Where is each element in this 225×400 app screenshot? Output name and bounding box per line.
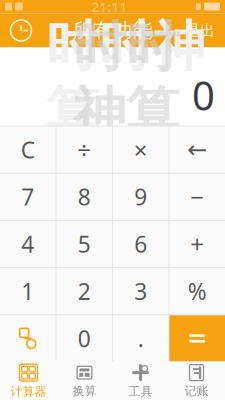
staticText: 2	[78, 276, 91, 306]
button[interactable]: 1	[0, 268, 55, 314]
button[interactable]: 换算	[56, 361, 112, 400]
button[interactable]: 3	[113, 268, 168, 314]
button[interactable]: 工具	[112, 361, 168, 400]
button[interactable]: 乘	[113, 126, 168, 173]
button[interactable]: 退格	[169, 126, 225, 173]
staticText: 5	[78, 229, 91, 259]
button[interactable]: 9	[113, 174, 168, 220]
staticText: ×	[134, 134, 148, 166]
button[interactable]: 计算器	[0, 361, 56, 400]
staticText: 4	[21, 229, 34, 259]
staticText: −	[190, 181, 204, 213]
button[interactable]: 百分比	[169, 268, 225, 314]
button[interactable]: 6	[113, 221, 168, 267]
button[interactable]: 历史记录	[0, 14, 33, 46]
staticText: +	[190, 228, 204, 260]
button[interactable]: 7	[0, 174, 55, 220]
staticText: 3	[134, 276, 147, 306]
staticText: 0	[78, 323, 91, 353]
staticText: ÷	[77, 134, 91, 166]
button[interactable]: 8	[56, 174, 112, 220]
staticText: 记账	[184, 384, 208, 398]
button[interactable]: 0	[56, 315, 112, 361]
staticText: 8	[78, 182, 91, 212]
button[interactable]: 小数点	[113, 315, 168, 361]
button[interactable]: 除	[56, 126, 112, 173]
staticText: 工具	[128, 384, 152, 399]
staticText: 换算	[72, 384, 96, 398]
button[interactable]: 5	[56, 221, 112, 267]
staticText: %	[188, 276, 207, 306]
staticText: 计算器	[10, 384, 46, 399]
staticText: ←	[187, 136, 207, 163]
staticText: 21:11	[91, 0, 127, 15]
button[interactable]: 单位换算	[0, 315, 55, 361]
button[interactable]: 退出	[185, 15, 225, 45]
staticText: 时时神算	[46, 14, 205, 145]
staticText: 7	[21, 182, 34, 212]
staticText: .	[138, 323, 144, 353]
staticText: 时时神算	[73, 14, 179, 145]
staticText: 所有功能	[72, 18, 152, 43]
button[interactable]: 等于	[169, 315, 225, 361]
staticText: 退出	[185, 21, 215, 39]
staticText: 6	[134, 229, 147, 259]
staticText: 0	[192, 68, 215, 121]
staticText: 9	[134, 182, 147, 212]
button[interactable]: 加	[169, 221, 225, 267]
button[interactable]: 4	[0, 221, 55, 267]
button[interactable]: 减	[169, 174, 225, 220]
button[interactable]: 记账	[168, 361, 224, 400]
staticText: C	[21, 134, 35, 165]
staticText: 1	[21, 276, 34, 306]
button[interactable]: 清除	[0, 126, 55, 173]
button[interactable]: 2	[56, 268, 112, 314]
